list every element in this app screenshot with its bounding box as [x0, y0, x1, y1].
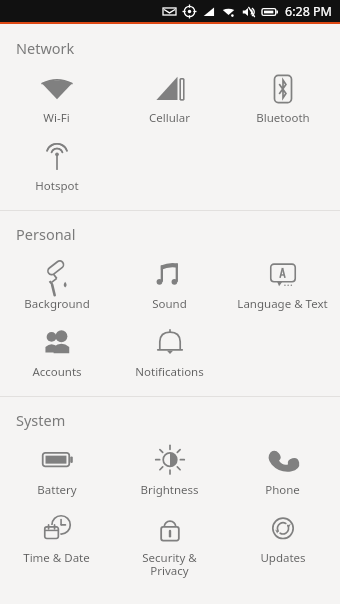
staticText: Security & Privacy [142, 550, 197, 579]
button[interactable]: Accounts [0, 318, 113, 386]
staticText: Background [24, 296, 90, 312]
button[interactable]: Sound [113, 250, 226, 318]
staticText: Hotspot [35, 178, 79, 194]
button[interactable]: Notifications [113, 318, 226, 386]
button[interactable]: Bluetooth [226, 64, 339, 132]
staticText: Personal [16, 224, 76, 244]
staticText: Battery [37, 482, 77, 498]
staticText: System [16, 410, 66, 430]
staticText: Phone [265, 482, 300, 498]
staticText: Time & Date [23, 550, 90, 566]
staticText: Updates [260, 550, 306, 566]
button[interactable]: Updates [226, 504, 339, 572]
button[interactable]: Hotspot [0, 132, 113, 200]
button[interactable]: Battery [0, 436, 113, 504]
staticText: 6:28 PM [285, 3, 332, 20]
staticText: Sound [152, 296, 187, 312]
staticText: Accounts [32, 364, 82, 380]
staticText: Cellular [149, 110, 190, 126]
button[interactable]: Brightness [113, 436, 226, 504]
button[interactable]: Cellular [113, 64, 226, 132]
staticText: Network [16, 38, 75, 58]
button[interactable]: Time & Date [0, 504, 113, 572]
staticText: Brightness [140, 482, 199, 498]
staticText: Notifications [135, 364, 204, 380]
staticText: Wi-Fi [43, 110, 70, 126]
button[interactable]: Background [0, 250, 113, 318]
button[interactable]: Security & Privacy [113, 504, 226, 585]
staticText: Language & Text [237, 296, 328, 312]
button[interactable]: Phone [226, 436, 339, 504]
button[interactable]: Wi-Fi [0, 64, 113, 132]
staticText: Bluetooth [256, 110, 310, 126]
button[interactable]: Language & Text [226, 250, 339, 318]
